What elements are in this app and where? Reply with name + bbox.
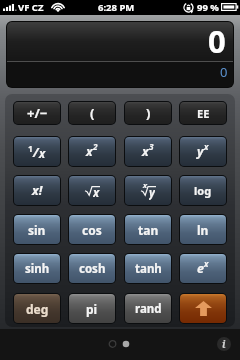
staticText: log xyxy=(194,183,212,198)
staticText: y xyxy=(197,143,204,160)
button[interactable]: tanh xyxy=(125,254,171,283)
button[interactable]: rand xyxy=(125,294,171,323)
button[interactable]: y xyxy=(180,137,226,166)
staticText: ) xyxy=(146,104,151,122)
button[interactable]: cosh xyxy=(69,254,115,283)
staticText: cos xyxy=(82,222,102,238)
button[interactable]: ( xyxy=(69,102,115,124)
button[interactable]: cos xyxy=(69,215,115,244)
staticText: EE xyxy=(197,106,210,121)
staticText: x! xyxy=(32,182,43,199)
staticText: pi xyxy=(86,301,98,317)
button[interactable]: sin xyxy=(14,215,60,244)
button[interactable]: Info xyxy=(217,337,231,351)
staticText: x xyxy=(143,180,148,190)
staticText: ln xyxy=(197,222,209,238)
staticText: 0 xyxy=(208,22,226,59)
button[interactable]: EE xyxy=(180,102,226,124)
staticText: x xyxy=(142,143,149,160)
button[interactable]: ) xyxy=(125,102,171,124)
button[interactable]: +/− xyxy=(14,102,60,124)
staticText: x xyxy=(204,141,209,152)
staticText: x xyxy=(93,185,100,200)
staticText: 6:28 PM xyxy=(98,1,135,14)
staticText: 2 xyxy=(93,141,98,152)
button[interactable]: ln xyxy=(180,215,226,244)
staticText: +/− xyxy=(27,104,48,122)
staticText: x xyxy=(86,143,93,160)
staticText: tan xyxy=(138,222,159,238)
staticText: tanh xyxy=(135,261,162,277)
staticText: 3 xyxy=(149,141,154,152)
button[interactable]: x! xyxy=(14,176,60,205)
staticText: VF CZ xyxy=(18,1,44,14)
button[interactable]: x xyxy=(69,137,115,166)
staticText: sinh xyxy=(25,261,50,277)
button[interactable]: pi xyxy=(69,294,115,323)
staticText: 0 xyxy=(220,63,228,81)
staticText: 99 % xyxy=(197,1,219,14)
button[interactable]: e xyxy=(180,254,226,283)
button[interactable] xyxy=(180,294,226,323)
staticText: / xyxy=(33,143,39,161)
staticText: sin xyxy=(28,222,46,238)
button[interactable]: 1 xyxy=(14,137,60,166)
button[interactable]: deg xyxy=(14,294,60,323)
staticText: ( xyxy=(90,104,95,122)
button[interactable]: x xyxy=(69,176,115,205)
staticText: deg xyxy=(26,301,49,317)
staticText: 1 xyxy=(28,143,33,155)
staticText: x xyxy=(204,258,209,269)
button[interactable]: tan xyxy=(125,215,171,244)
button[interactable]: sinh xyxy=(14,254,60,283)
staticText: rand xyxy=(135,301,162,317)
button[interactable]: x xyxy=(125,137,171,166)
staticText: cosh xyxy=(79,261,106,277)
staticText: y xyxy=(149,185,155,200)
other: Shift xyxy=(179,293,227,324)
staticText: x xyxy=(39,146,46,162)
staticText: i xyxy=(222,337,226,351)
button[interactable]: y xyxy=(125,176,171,205)
staticText: e xyxy=(197,260,204,277)
button[interactable]: log xyxy=(180,176,226,205)
